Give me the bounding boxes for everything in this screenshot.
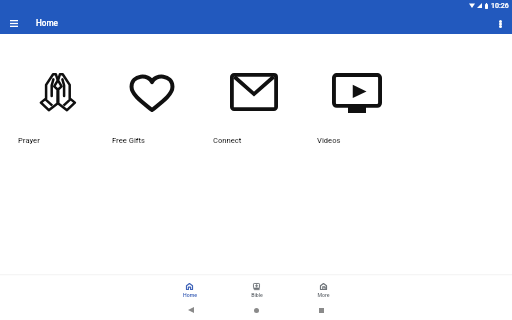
button[interactable]: More options: [490, 13, 511, 34]
staticText: Bible: [251, 292, 263, 298]
button[interactable]: Open navigation drawer: [3, 13, 24, 34]
button[interactable]: Free Gifts: [104, 60, 200, 152]
staticText: Prayer: [18, 136, 40, 145]
staticText: Home: [183, 292, 197, 298]
staticText: Home: [36, 18, 58, 28]
staticText: Free Gifts: [112, 136, 145, 145]
button[interactable]: Videos: [309, 60, 405, 152]
button[interactable]: Recent apps: [312, 301, 330, 319]
button[interactable]: Back: [182, 301, 200, 319]
button[interactable]: Prayer: [10, 60, 106, 152]
button[interactable]: Bible: [223, 276, 290, 300]
staticText: More: [317, 292, 330, 298]
staticText: Connect: [213, 136, 242, 145]
button[interactable]: Connect: [205, 60, 301, 152]
staticText: Videos: [317, 136, 341, 145]
button[interactable]: Home: [247, 301, 265, 319]
button[interactable]: More: [290, 276, 357, 300]
button[interactable]: Home: [156, 276, 223, 300]
staticText: 10:26: [491, 2, 509, 10]
